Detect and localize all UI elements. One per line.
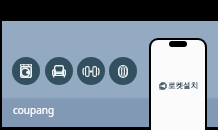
button[interactable]: Rocket Install app preview [151, 40, 205, 130]
button[interactable]: Home appliances [12, 57, 40, 85]
staticText: 로켓설치 [168, 81, 198, 90]
button[interactable]: coupang [13, 103, 55, 117]
staticText: coupang [13, 103, 55, 117]
button[interactable]: Furniture [45, 57, 73, 85]
button[interactable]: Fitness equipment [77, 57, 105, 85]
button[interactable]: Tires [109, 57, 137, 85]
